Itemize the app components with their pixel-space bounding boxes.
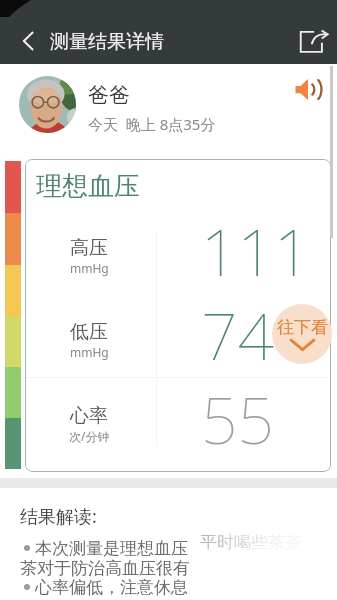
- staticText: 高压: [70, 236, 108, 260]
- staticText: 爸爸: [88, 82, 130, 108]
- staticText: 平时喝些茶茶: [200, 532, 302, 553]
- staticText: 心率: [70, 404, 108, 428]
- staticText: 74: [201, 292, 274, 376]
- button[interactable]: Back: [9, 9, 47, 73]
- staticText: 今天 晚上 8点35分: [88, 114, 216, 134]
- staticText: 结果解读:: [20, 504, 97, 529]
- staticText: 茶对于防治高血压很有: [20, 558, 190, 579]
- staticText: mmHg: [70, 344, 109, 360]
- staticText: 本次测量是理想血压: [35, 538, 188, 559]
- staticText: 测量结果详情: [50, 30, 164, 54]
- button[interactable]: Scroll down: [272, 304, 332, 364]
- button[interactable]: 爸爸: [0, 64, 337, 144]
- staticText: 111: [201, 208, 311, 292]
- button[interactable]: Play voice: [289, 70, 327, 108]
- staticText: 55: [201, 376, 274, 460]
- staticText: 低压: [70, 320, 108, 344]
- staticText: mmHg: [70, 260, 109, 276]
- button[interactable]: Share: [292, 9, 334, 73]
- staticText: 心率偏低，注意休息: [35, 577, 188, 598]
- staticText: 往下看: [277, 317, 328, 338]
- staticText: 理想血压: [36, 170, 140, 203]
- staticText: 次/分钟: [69, 428, 110, 444]
